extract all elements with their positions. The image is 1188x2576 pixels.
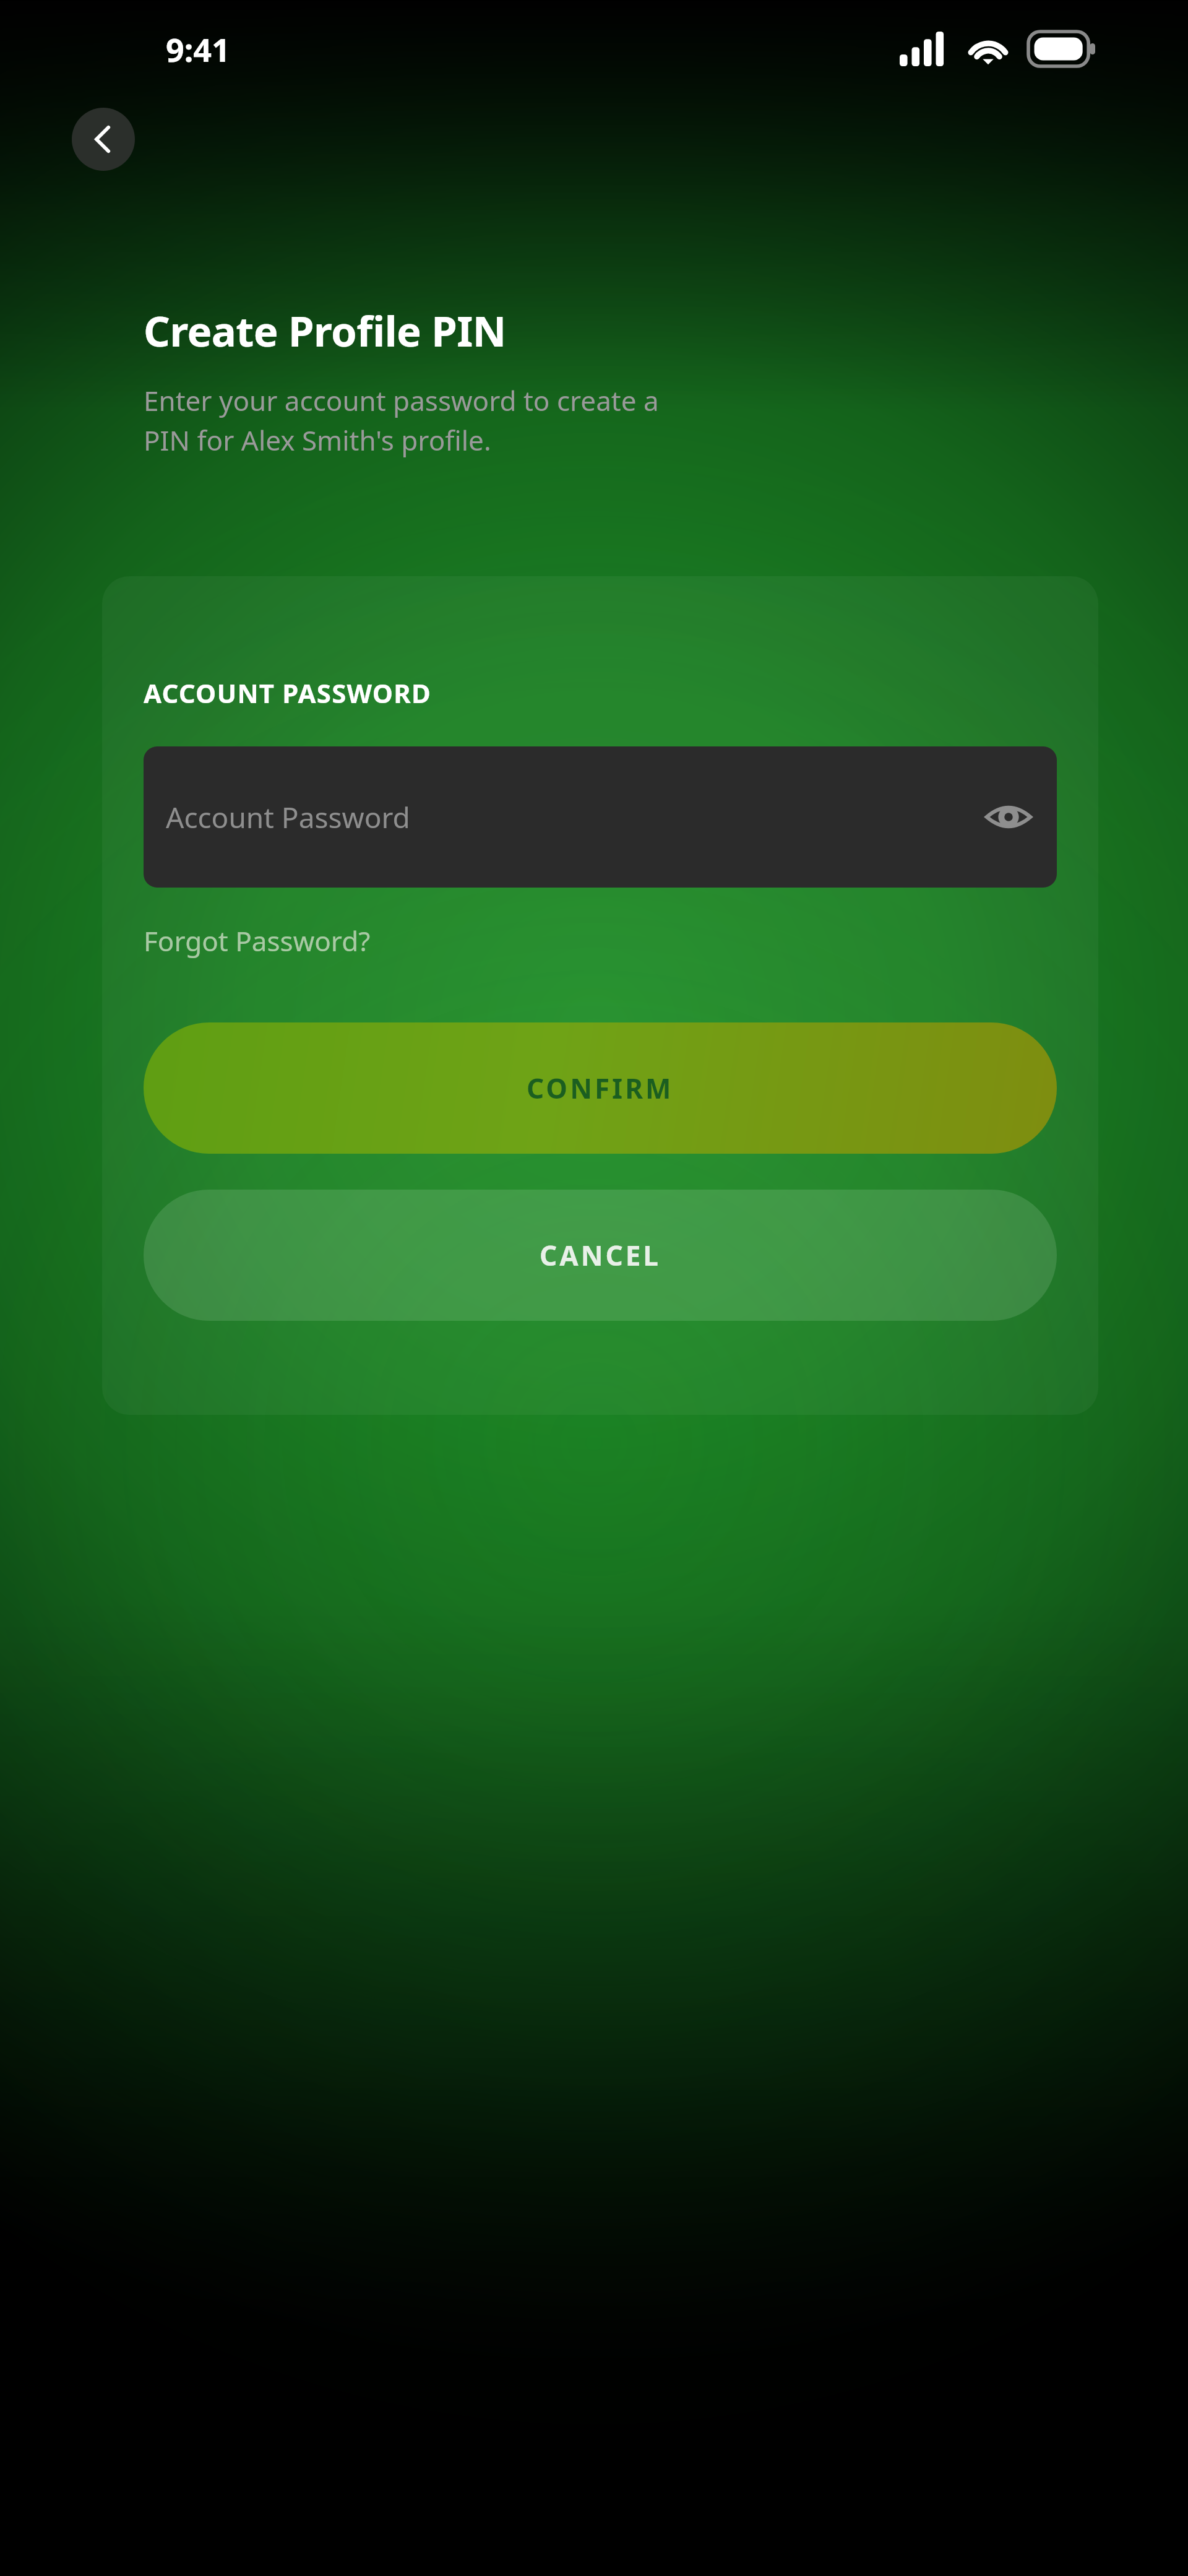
staticText: CONFIRM [527, 1070, 674, 1107]
button[interactable]: CONFIRM [144, 1022, 1057, 1154]
button[interactable]: Forgot Password? [144, 918, 371, 963]
staticText: Account Password [166, 798, 410, 837]
button[interactable]: CANCEL [144, 1190, 1057, 1321]
button[interactable]: Account Password [144, 746, 1057, 888]
staticText: Create Profile PIN [144, 302, 506, 358]
staticText: Enter your account password to create a … [144, 382, 659, 459]
button[interactable]: Back [72, 108, 135, 171]
button[interactable]: Show password [979, 787, 1038, 847]
staticText: 9:41 [166, 27, 230, 71]
staticText: CANCEL [540, 1237, 661, 1274]
staticText: ACCOUNT PASSWORD [144, 675, 431, 711]
staticText: Forgot Password? [144, 922, 371, 959]
